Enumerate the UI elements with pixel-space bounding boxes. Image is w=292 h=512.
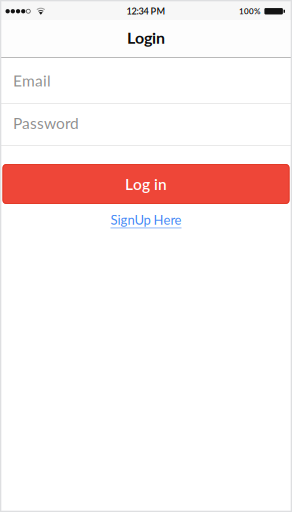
staticText: Login xyxy=(127,28,165,47)
staticText: 12:34 PM xyxy=(126,6,165,16)
button[interactable]: SignUp Here xyxy=(110,212,181,227)
staticText: SignUp Here xyxy=(110,212,181,227)
button[interactable]: Password xyxy=(0,104,292,145)
staticText: Email xyxy=(13,71,51,89)
button[interactable]: Email xyxy=(0,58,292,103)
staticText: 100% xyxy=(239,7,260,16)
staticText: Log in xyxy=(125,175,167,193)
staticText: Password xyxy=(13,114,79,132)
button[interactable]: Log in xyxy=(0,164,292,204)
